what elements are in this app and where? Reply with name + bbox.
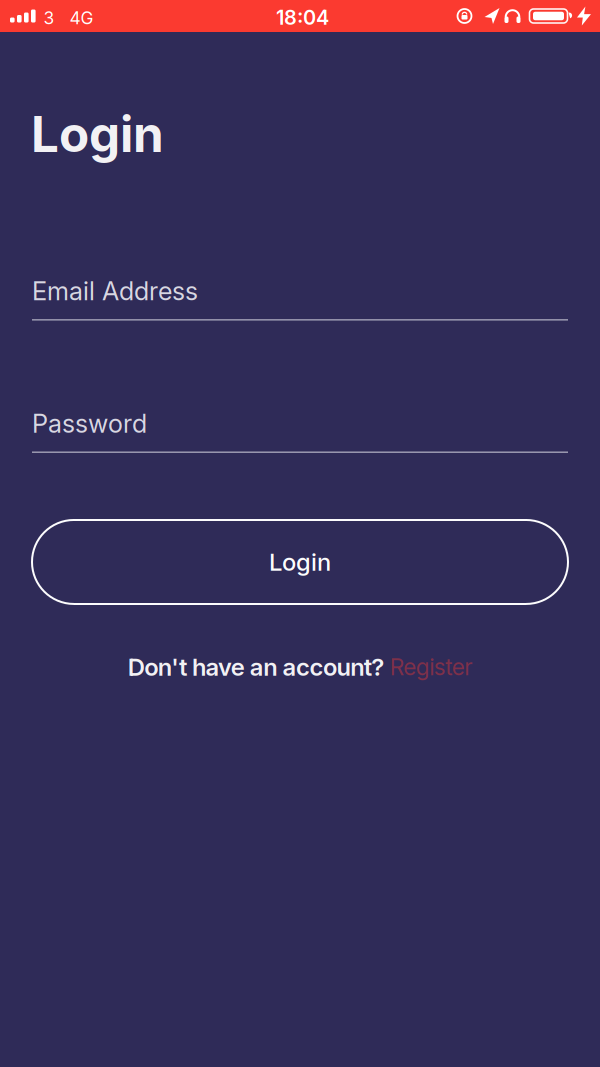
button[interactable]: Email Address <box>0 276 600 321</box>
staticText: Login <box>31 105 164 163</box>
staticText: Login <box>269 548 331 576</box>
staticText: Email Address <box>32 276 198 306</box>
staticText: Password <box>32 409 147 438</box>
button[interactable]: Register <box>390 654 472 680</box>
staticText: Don't have an account? <box>128 653 390 681</box>
button[interactable]: Login <box>0 520 600 604</box>
staticText: 18:04 <box>276 6 329 29</box>
staticText: Register <box>390 654 472 680</box>
staticText: 4G <box>70 8 94 28</box>
button[interactable]: Password <box>0 409 600 453</box>
staticText: 3 <box>44 8 55 28</box>
